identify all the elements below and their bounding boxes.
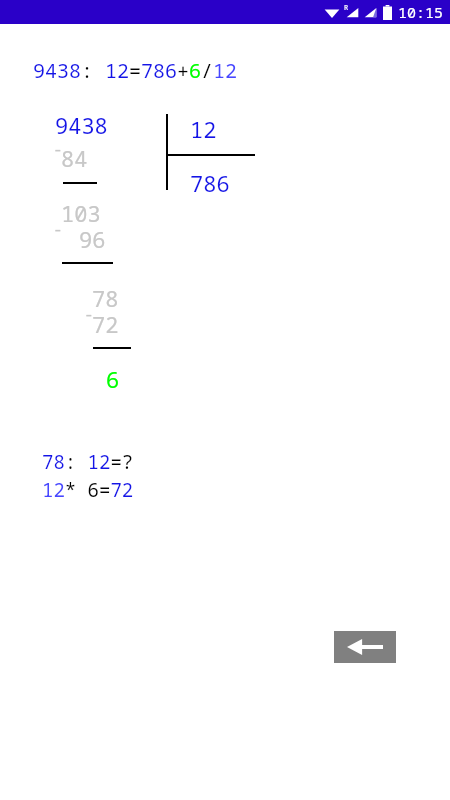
staticText: 103 — [61, 198, 101, 228]
staticText: 9438: 12=786+6/12 — [33, 57, 237, 84]
staticText: 9438 — [55, 110, 108, 140]
staticText: - — [53, 138, 63, 160]
staticText: 10:15 — [398, 2, 444, 22]
staticText: 786 — [190, 168, 230, 198]
staticText: 12 — [190, 114, 217, 144]
staticText: - — [53, 218, 63, 240]
button[interactable]: Back — [334, 631, 396, 663]
staticText: 12* 6=72 — [42, 477, 134, 503]
staticText: 84 — [61, 143, 88, 173]
staticText: R — [344, 3, 349, 13]
staticText: 6 — [106, 364, 120, 394]
staticText: - — [84, 303, 94, 325]
staticText: 78: 12=? — [42, 449, 134, 475]
staticText: 96 — [79, 224, 106, 254]
staticText: 78 — [92, 283, 119, 313]
staticText: 72 — [92, 309, 119, 339]
